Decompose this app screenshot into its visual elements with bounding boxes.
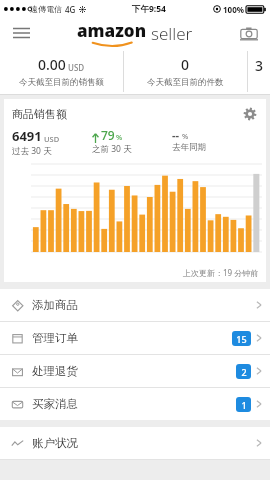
button[interactable]: Menu <box>8 20 34 46</box>
button[interactable]: 账户状况 <box>0 427 270 459</box>
button[interactable]: 添加商品 <box>0 289 270 321</box>
staticText: USD <box>44 134 60 144</box>
button[interactable]: 3 <box>248 48 270 95</box>
button[interactable]: Settings <box>240 104 260 124</box>
staticText: USD <box>68 62 85 73</box>
button[interactable]: Camera scan <box>236 20 262 46</box>
staticText: 2 <box>241 366 247 378</box>
staticText: 15 <box>236 333 247 345</box>
staticText: % <box>116 132 123 142</box>
button[interactable]: 0 <box>124 48 247 95</box>
staticText: 今天截至目前的件数 <box>147 77 224 88</box>
staticText: 添加商品 <box>32 298 78 312</box>
staticText: 过去 30 天 <box>12 145 52 157</box>
staticText: 买家消息 <box>32 397 78 411</box>
staticText: 之前 30 天 <box>92 143 132 155</box>
staticText: 1 <box>241 399 247 411</box>
staticText: 今天截至目前的销售额 <box>19 77 104 88</box>
button[interactable]: 处理退货 <box>0 355 270 387</box>
staticText: 遠傳電信 <box>30 4 62 14</box>
staticText: seller <box>151 22 193 45</box>
button[interactable]: 管理订单 <box>0 322 270 354</box>
staticText: -- <box>172 127 180 142</box>
staticText: 处理退货 <box>32 364 78 378</box>
staticText: 账户状况 <box>32 436 78 450</box>
staticText: amazon <box>77 19 147 42</box>
staticText: 0.00 <box>38 55 66 74</box>
staticText: 100% <box>223 4 244 15</box>
staticText: 0 <box>181 55 190 74</box>
staticText: 商品销售额 <box>12 107 67 121</box>
staticText: 下午9:54 <box>132 3 166 15</box>
staticText: % <box>182 131 189 141</box>
staticText: 上次更新：19 分钟前 <box>183 267 259 278</box>
staticText: 3 <box>255 56 264 75</box>
staticText: 4G <box>65 4 76 15</box>
staticText: 6491 <box>12 127 42 145</box>
staticText: 79 <box>101 127 115 143</box>
button[interactable]: 0.00 <box>0 48 123 95</box>
staticText: 去年同期 <box>172 142 206 153</box>
staticText: 管理订单 <box>32 331 78 345</box>
button[interactable]: 买家消息 <box>0 388 270 420</box>
